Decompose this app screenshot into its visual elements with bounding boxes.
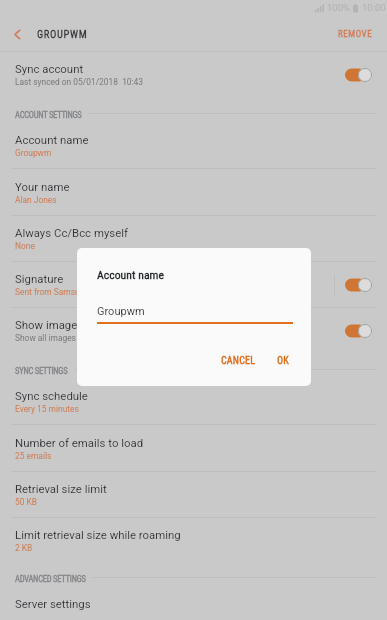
staticText: Show all images: [15, 333, 76, 343]
staticText: Groupwm: [97, 305, 145, 318]
staticText: Alan Jones: [15, 195, 57, 205]
staticText: Sync schedule: [15, 389, 88, 402]
staticText: Sync account: [15, 62, 84, 75]
staticText: Account name: [97, 268, 165, 282]
button[interactable]: Show images: [0, 308, 387, 353]
button[interactable]: Always Cc/Bcc myself: [0, 216, 387, 261]
staticText: Your name: [15, 180, 70, 193]
staticText: Last synced on 05/01/2018 10:43: [15, 77, 144, 87]
staticText: ACCOUNT SETTINGS: [15, 110, 82, 120]
button[interactable]: Sync schedule: [0, 378, 387, 424]
staticText: GROUPWM: [37, 28, 88, 40]
staticText: CANCEL: [221, 355, 256, 367]
button[interactable]: OK: [273, 352, 293, 370]
staticText: SYNC SETTINGS: [15, 366, 68, 376]
button[interactable]: Sync account: [0, 52, 387, 97]
staticText: Server settings: [15, 597, 91, 610]
staticText: None: [15, 241, 35, 251]
staticText: 25 emails: [15, 451, 52, 461]
button[interactable]: Retrieval size limit: [0, 472, 387, 517]
staticText: Signature: [15, 272, 64, 285]
button[interactable]: Signature: [0, 262, 387, 307]
staticText: Number of emails to load: [15, 436, 144, 449]
staticText: Groupwm: [15, 148, 52, 158]
staticText: Retrieval size limit: [15, 482, 107, 495]
staticText: Account name: [15, 133, 89, 146]
staticText: 2 KB: [15, 543, 33, 553]
button[interactable]: CANCEL: [217, 352, 260, 370]
button[interactable]: Navigate up: [0, 17, 35, 51]
button[interactable]: Account name: [0, 122, 387, 168]
button[interactable]: Server settings: [0, 586, 387, 620]
staticText: Limit retrieval size while roaming: [15, 528, 181, 541]
staticText: 10:00: [362, 2, 386, 13]
staticText: 100%: [327, 2, 350, 13]
staticText: Always Cc/Bcc myself: [15, 226, 128, 239]
button[interactable]: Limit retrieval size while roaming: [0, 518, 387, 563]
button[interactable]: Your name: [0, 169, 387, 215]
staticText: 50 KB: [15, 497, 38, 507]
staticText: Sent from Samsung Mobile: [15, 287, 117, 297]
staticText: ADVANCED SETTINGS: [15, 574, 86, 584]
staticText: Every 15 minutes: [15, 404, 79, 414]
staticText: Show images: [15, 318, 84, 331]
staticText: OK: [277, 355, 289, 367]
button[interactable]: REMOVE: [324, 17, 387, 51]
staticText: REMOVE: [338, 29, 373, 40]
button[interactable]: Number of emails to load: [0, 425, 387, 471]
